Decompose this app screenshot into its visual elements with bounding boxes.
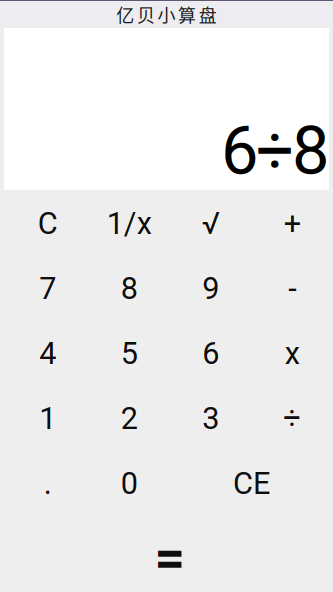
staticText: x — [285, 335, 300, 371]
staticText: 4 — [39, 335, 56, 371]
staticText: 0 — [121, 465, 138, 501]
button[interactable]: √ — [170, 191, 251, 256]
staticText: + — [284, 205, 301, 241]
staticText: 亿 — [116, 1, 134, 28]
staticText: 1 — [39, 400, 56, 436]
button[interactable]: 1 — [7, 386, 88, 451]
staticText: . — [44, 465, 52, 501]
staticText: 贝 — [137, 1, 155, 28]
staticText: 8 — [121, 270, 138, 306]
staticText: √ — [202, 205, 220, 241]
button[interactable]: 7 — [7, 256, 88, 321]
button[interactable]: ÷ — [251, 386, 333, 451]
staticText: 2 — [121, 400, 138, 436]
staticText: 算 — [178, 1, 196, 28]
button[interactable]: = — [7, 525, 333, 590]
button[interactable]: 4 — [7, 321, 88, 386]
button[interactable]: . — [7, 451, 88, 516]
staticText: ÷ — [283, 400, 301, 436]
button[interactable]: C — [7, 191, 88, 256]
staticText: 小 — [157, 1, 175, 28]
staticText: 9 — [202, 270, 219, 306]
staticText: CE — [233, 465, 270, 501]
button[interactable]: 9 — [170, 256, 251, 321]
staticText: 6 — [202, 335, 219, 371]
staticText: 7 — [39, 270, 56, 306]
staticText: 1/x — [107, 205, 152, 241]
staticText: - — [288, 270, 296, 306]
button[interactable]: 6 — [170, 321, 251, 386]
button[interactable]: CE — [170, 451, 333, 516]
button[interactable]: 1/x — [88, 191, 170, 256]
staticText: 盘 — [199, 1, 217, 28]
staticText: C — [38, 205, 58, 241]
button[interactable]: - — [251, 256, 333, 321]
button[interactable]: 2 — [88, 386, 170, 451]
button[interactable]: + — [251, 191, 333, 256]
button[interactable]: 8 — [88, 256, 170, 321]
staticText: 5 — [121, 335, 138, 371]
button[interactable]: x — [251, 321, 333, 386]
staticText: 3 — [202, 400, 219, 436]
staticText: 6÷8 — [221, 112, 329, 190]
button[interactable]: 5 — [88, 321, 170, 386]
button[interactable]: 0 — [88, 451, 170, 516]
staticText: = — [154, 526, 185, 589]
button[interactable]: 3 — [170, 386, 251, 451]
